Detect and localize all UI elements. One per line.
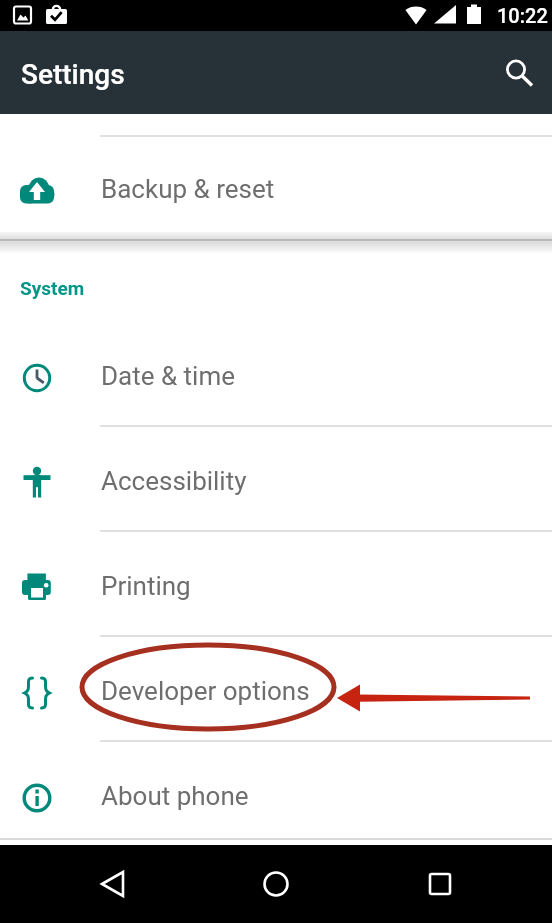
button[interactable]: Accessibility (0, 430, 552, 535)
staticText: About phone (101, 781, 249, 811)
button[interactable]: Developer options (0, 640, 552, 745)
button[interactable] (248, 856, 304, 912)
button[interactable]: About phone (0, 745, 552, 845)
button[interactable] (504, 51, 548, 95)
button[interactable] (412, 856, 468, 912)
staticText: Settings (21, 58, 125, 91)
staticText: Accessibility (101, 466, 247, 496)
button[interactable]: Printing (0, 535, 552, 640)
staticText: Printing (101, 571, 191, 601)
staticText: Backup & reset (101, 174, 275, 204)
staticText: Developer options (101, 676, 310, 706)
staticText: 10:22 (497, 4, 548, 27)
staticText: Date & time (101, 361, 235, 391)
button[interactable]: Backup & reset (0, 138, 552, 243)
button[interactable] (85, 856, 141, 912)
button[interactable]: Date & time (0, 325, 552, 430)
staticText: System (20, 277, 85, 299)
